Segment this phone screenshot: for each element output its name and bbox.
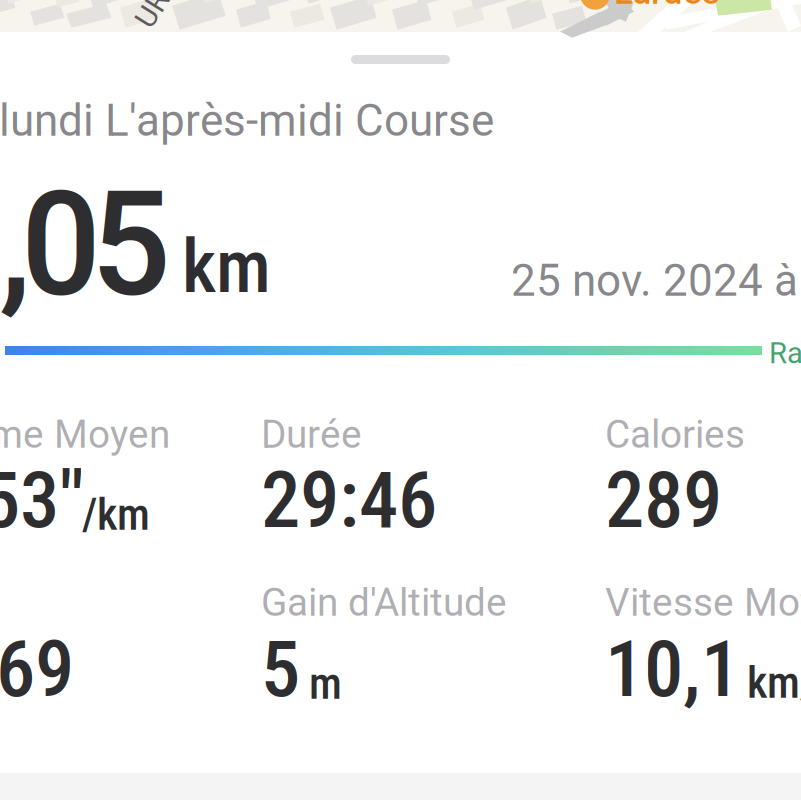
staticText: 5 (261, 623, 300, 715)
staticText: Durée (261, 412, 362, 457)
staticText: m (309, 658, 342, 710)
staticText: URI (132, 0, 177, 23)
staticText: lundi L'après-midi Course (0, 95, 494, 147)
staticText: ,05 (0, 161, 171, 330)
button[interactable]: lundi L'après-midi Course (0, 95, 494, 147)
staticText: km/h (747, 657, 801, 709)
staticText: Vitesse Moyenne (605, 580, 801, 625)
staticText: 169 (0, 623, 74, 715)
staticText: Calories (605, 412, 745, 457)
staticText: 289 (605, 454, 722, 546)
staticText: Rapide (769, 336, 801, 370)
staticText: 29:46 (261, 454, 437, 546)
staticText: 4'53" (0, 454, 84, 546)
staticText: /km (82, 489, 150, 541)
staticText: Gain d'Altitude (261, 580, 507, 625)
staticText: km (182, 224, 271, 310)
staticText: Lurdes (614, 0, 720, 12)
staticText: 10,1 (605, 623, 740, 715)
staticText: Rythme Moyen (0, 412, 170, 457)
staticText: 25 nov. 2024 à 17:42 (511, 255, 801, 307)
